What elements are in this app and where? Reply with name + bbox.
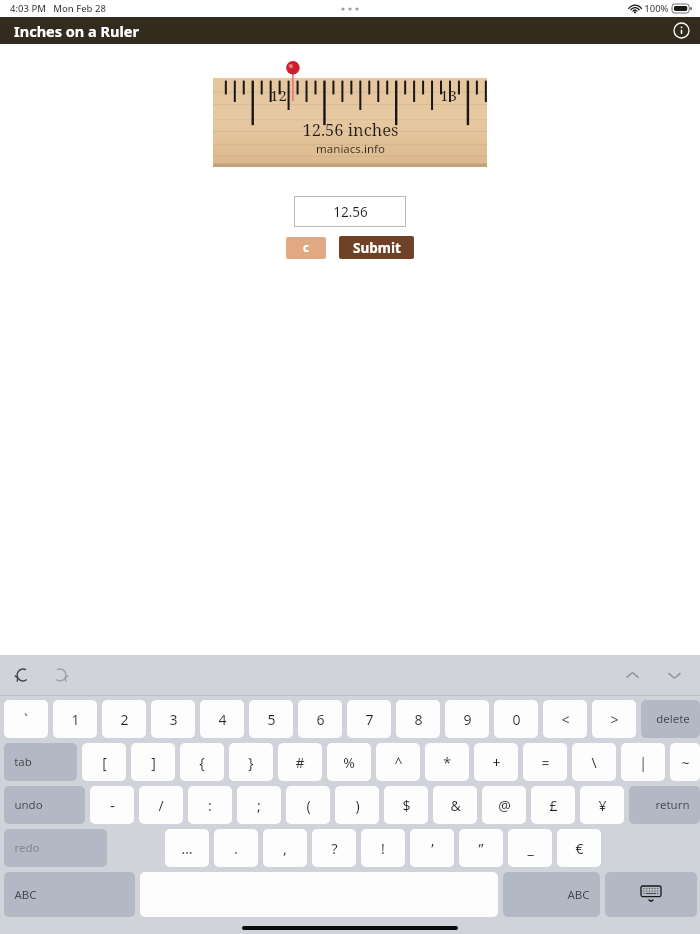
button[interactable]: Submit	[339, 236, 414, 259]
staticText: 100%	[644, 2, 669, 15]
button[interactable]: .	[214, 829, 258, 867]
button[interactable]: Previous field	[620, 663, 644, 687]
staticText: 13	[440, 85, 457, 105]
button[interactable]: 3	[151, 700, 195, 738]
button[interactable]: ]	[131, 743, 175, 781]
staticText: /	[158, 796, 164, 815]
button[interactable]: ;	[237, 786, 281, 824]
staticText: 3	[169, 710, 178, 729]
button[interactable]: =	[523, 743, 567, 781]
staticText: 5	[267, 710, 276, 729]
staticText: undo	[14, 797, 43, 813]
staticText: ;	[257, 796, 261, 815]
button[interactable]: &	[433, 786, 477, 824]
staticText: ABC	[14, 887, 37, 903]
button[interactable]: …	[165, 829, 209, 867]
button[interactable]: redo	[4, 829, 107, 867]
staticText: $	[402, 796, 411, 815]
staticText: 4	[218, 710, 227, 729]
button[interactable]: %	[327, 743, 371, 781]
button[interactable]: *	[425, 743, 469, 781]
button[interactable]: Undo	[10, 662, 36, 688]
button[interactable]: tab	[4, 743, 77, 781]
button[interactable]: 6	[298, 700, 342, 738]
staticText: =	[541, 753, 550, 772]
staticText: *	[443, 753, 451, 772]
button[interactable]: Info	[662, 17, 700, 44]
staticText: #	[295, 753, 305, 772]
button[interactable]: delete	[641, 700, 700, 738]
button[interactable]: ^	[376, 743, 420, 781]
staticText: <	[561, 710, 570, 729]
button[interactable]: 8	[396, 700, 440, 738]
button[interactable]: ,	[263, 829, 307, 867]
button[interactable]: @	[482, 786, 526, 824]
button[interactable]: <	[543, 700, 587, 738]
staticText: tab	[14, 754, 32, 770]
staticText: ’	[431, 839, 434, 858]
button[interactable]: _	[508, 829, 552, 867]
button[interactable]: £	[531, 786, 575, 824]
button[interactable]: 4	[200, 700, 244, 738]
button[interactable]: Next field	[662, 663, 686, 687]
button[interactable]: 0	[494, 700, 538, 738]
button[interactable]: Hide keyboard	[605, 872, 697, 917]
staticText: 4:03 PM	[10, 2, 46, 15]
button[interactable]: return	[629, 786, 700, 824]
button[interactable]: 5	[249, 700, 293, 738]
button[interactable]: ABC	[503, 872, 600, 917]
staticText: :	[208, 796, 212, 815]
button[interactable]: ABC	[4, 872, 135, 917]
button[interactable]: {	[180, 743, 224, 781]
button[interactable]: !	[361, 829, 405, 867]
staticText: return	[655, 797, 690, 813]
button[interactable]: undo	[4, 786, 85, 824]
staticText: 7	[365, 710, 374, 729]
button[interactable]: )	[335, 786, 379, 824]
staticText: -	[110, 796, 115, 815]
button[interactable]: `	[4, 700, 48, 738]
button[interactable]: >	[592, 700, 636, 738]
button[interactable]: ¥	[580, 786, 624, 824]
staticText: ,	[283, 839, 287, 858]
button[interactable]: 7	[347, 700, 391, 738]
button[interactable]: (	[286, 786, 330, 824]
button[interactable]: 12.56	[294, 196, 406, 227]
staticText: ]	[151, 753, 156, 772]
staticText: )	[355, 796, 360, 815]
staticText: }	[248, 753, 254, 772]
button[interactable]: ”	[459, 829, 503, 867]
button[interactable]: ?	[312, 829, 356, 867]
button[interactable]: [	[82, 743, 126, 781]
staticText: ¥	[598, 796, 607, 815]
staticText: (	[306, 796, 311, 815]
staticText: maniacs.info	[316, 141, 385, 157]
staticText: £	[549, 796, 558, 815]
staticText: !	[381, 839, 385, 858]
button[interactable]: c	[286, 237, 326, 259]
button[interactable]: $	[384, 786, 428, 824]
staticText: ”	[478, 839, 484, 858]
button[interactable]: +	[474, 743, 518, 781]
button[interactable]: 1	[53, 700, 97, 738]
staticText: |	[639, 753, 647, 772]
button[interactable]: Inches on a Ruler	[0, 17, 147, 44]
button[interactable]: ’	[410, 829, 454, 867]
staticText: 12.56	[333, 203, 368, 221]
button[interactable]: \	[572, 743, 616, 781]
button[interactable]: }	[229, 743, 273, 781]
staticText: .	[234, 839, 238, 858]
staticText: €	[575, 839, 584, 858]
button[interactable]: -	[90, 786, 134, 824]
button[interactable]: |	[621, 743, 665, 781]
staticText: c	[303, 240, 309, 256]
button[interactable]: €	[557, 829, 601, 867]
button[interactable]: ~	[670, 743, 700, 781]
button[interactable]: Redo	[47, 662, 73, 688]
button[interactable]: #	[278, 743, 322, 781]
button[interactable]: /	[139, 786, 183, 824]
button[interactable]: 2	[102, 700, 146, 738]
button[interactable]: :	[188, 786, 232, 824]
button[interactable]: 9	[445, 700, 489, 738]
